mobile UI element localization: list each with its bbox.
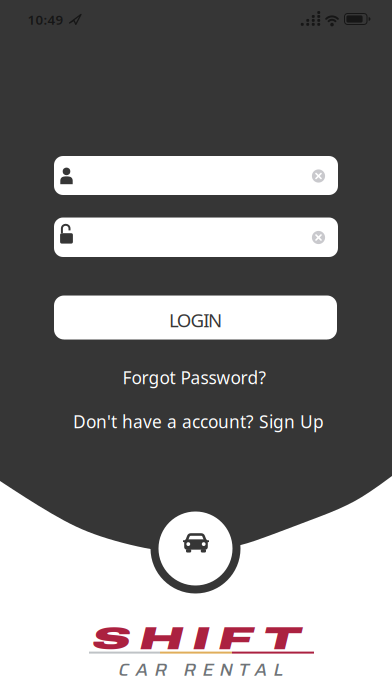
button[interactable]: Username [0, 0, 392, 696]
staticText: Forgot Password? [122, 366, 266, 389]
button[interactable]: Forgot Password? [122, 366, 266, 389]
staticText: LOGIN [169, 308, 222, 332]
staticText: Don't have a account? Sign Up [73, 410, 324, 433]
button[interactable]: LOGIN [0, 0, 392, 696]
button[interactable]: Password [0, 0, 392, 696]
staticText: SHIFT [123, 622, 269, 656]
staticText: 10:49 [27, 11, 63, 28]
staticText: CAR RENTAL [118, 655, 283, 684]
button[interactable]: Don't have a account? Sign Up [73, 410, 324, 433]
